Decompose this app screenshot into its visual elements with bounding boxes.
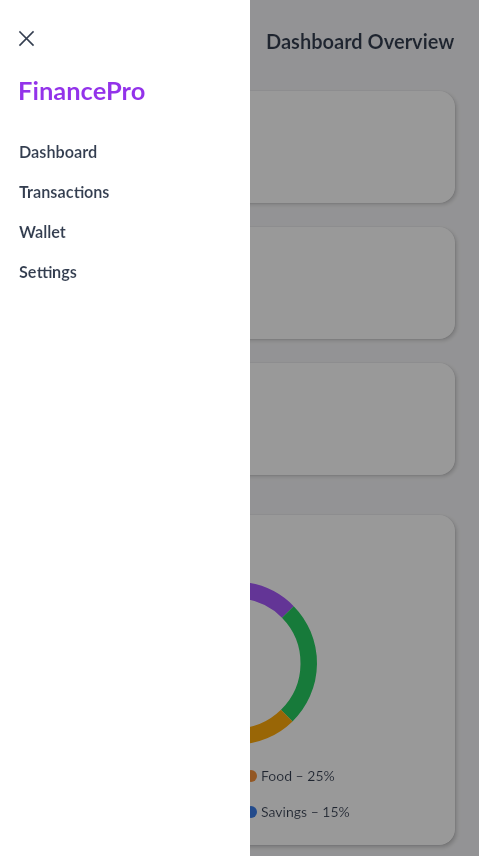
button[interactable] xyxy=(14,91,455,203)
staticText: Transactions xyxy=(19,182,110,201)
staticText: Food – 25% xyxy=(261,767,335,784)
button[interactable]: Wallet xyxy=(0,211,250,251)
button[interactable]: Dashboard xyxy=(0,131,250,171)
staticText: FinancePro xyxy=(18,75,146,106)
staticText: Dashboard Overview xyxy=(266,29,455,53)
staticText: Settings xyxy=(19,262,77,281)
staticText: Savings – 15% xyxy=(261,803,350,820)
button[interactable]: Food – 25% xyxy=(245,767,335,784)
button[interactable]: Close menu xyxy=(11,23,41,53)
button[interactable]: Close navigation drawer xyxy=(0,0,479,856)
button[interactable]: Settings xyxy=(0,251,250,291)
staticText: Dashboard xyxy=(19,142,98,161)
button[interactable] xyxy=(14,227,455,339)
button[interactable] xyxy=(14,363,455,475)
staticText: Wallet xyxy=(19,222,66,241)
button[interactable]: Transactions xyxy=(0,171,250,211)
button[interactable]: Savings – 15% xyxy=(245,803,350,820)
